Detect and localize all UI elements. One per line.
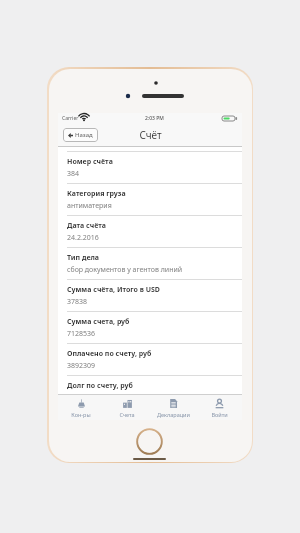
button[interactable]: Войти [196, 395, 242, 420]
staticText: 24.2.2016 [67, 233, 99, 243]
staticText: сбор документов у агентов линий [67, 265, 183, 275]
staticText: 7128536 [67, 329, 96, 339]
staticText: 384 [67, 169, 80, 179]
staticText: Счёт [139, 128, 162, 142]
staticText: 2:03 PM [145, 115, 164, 122]
staticText: антиматерия [67, 201, 112, 211]
staticText: Кон-ры [71, 411, 91, 418]
button[interactable]: Оплачено по счету, руб [58, 344, 242, 375]
staticText: 37838 [67, 297, 88, 307]
button[interactable]: Счета [104, 395, 150, 420]
button[interactable]: Номер счёта [58, 152, 242, 183]
staticText: Сумма счёта, Итого в USD [67, 285, 160, 295]
staticText: Долг по счету, руб [67, 381, 133, 390]
staticText: Категория груза [67, 189, 126, 199]
staticText: Счета [119, 411, 135, 418]
staticText: Войти [211, 411, 228, 418]
staticText: Дата счёта [67, 221, 106, 231]
button[interactable]: Долг по счету, руб [58, 376, 242, 394]
staticText: 3892309 [67, 361, 96, 371]
button[interactable]: Сумма счёта, Итого в USD [58, 280, 242, 311]
button[interactable]: Тип дела [58, 248, 242, 279]
button[interactable]: Дата счёта [58, 216, 242, 247]
button[interactable]: Назад [63, 128, 98, 142]
button[interactable]: Декларации [150, 395, 196, 420]
staticText: Декларации [157, 411, 190, 418]
staticText: Назад [75, 131, 93, 139]
button[interactable]: Категория груза [58, 184, 242, 215]
button[interactable]: Кон-ры [58, 395, 104, 420]
staticText: Сумма счета, руб [67, 317, 130, 327]
button[interactable]: Сумма счета, руб [58, 312, 242, 343]
staticText: Тип дела [67, 253, 99, 263]
staticText: Carrier [62, 115, 79, 122]
staticText: Номер счёта [67, 157, 113, 167]
staticText: Оплачено по счету, руб [67, 349, 152, 359]
